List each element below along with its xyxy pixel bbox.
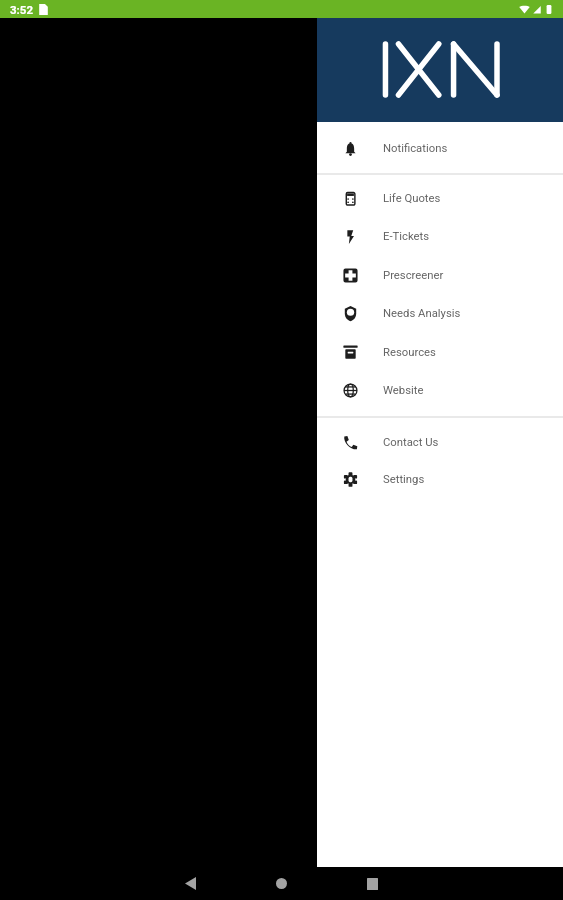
button[interactable]: Recent apps [352, 867, 392, 900]
button[interactable]: Home [261, 867, 301, 900]
button[interactable]: Contact Us [317, 423, 563, 461]
staticText: Resources [383, 346, 436, 359]
staticText: E-Tickets [383, 230, 430, 243]
button[interactable]: E-Tickets [317, 217, 563, 255]
button[interactable]: Website [317, 371, 563, 409]
button[interactable]: Back [170, 867, 210, 900]
button[interactable]: Life Quotes [317, 179, 563, 217]
button[interactable]: Needs Analysis [317, 294, 563, 332]
button[interactable]: Settings [317, 460, 563, 498]
staticText: 3:52 [10, 3, 34, 16]
staticText: Website [383, 384, 424, 397]
button[interactable]: Resources [317, 333, 563, 371]
staticText: Settings [383, 473, 425, 486]
staticText: Needs Analysis [383, 307, 461, 320]
button[interactable]: Notifications [317, 129, 563, 167]
button[interactable]: Prescreener [317, 256, 563, 294]
staticText: Life Quotes [383, 192, 441, 205]
staticText: Contact Us [383, 436, 439, 449]
staticText: Notifications [383, 142, 448, 155]
staticText: Prescreener [383, 269, 444, 282]
